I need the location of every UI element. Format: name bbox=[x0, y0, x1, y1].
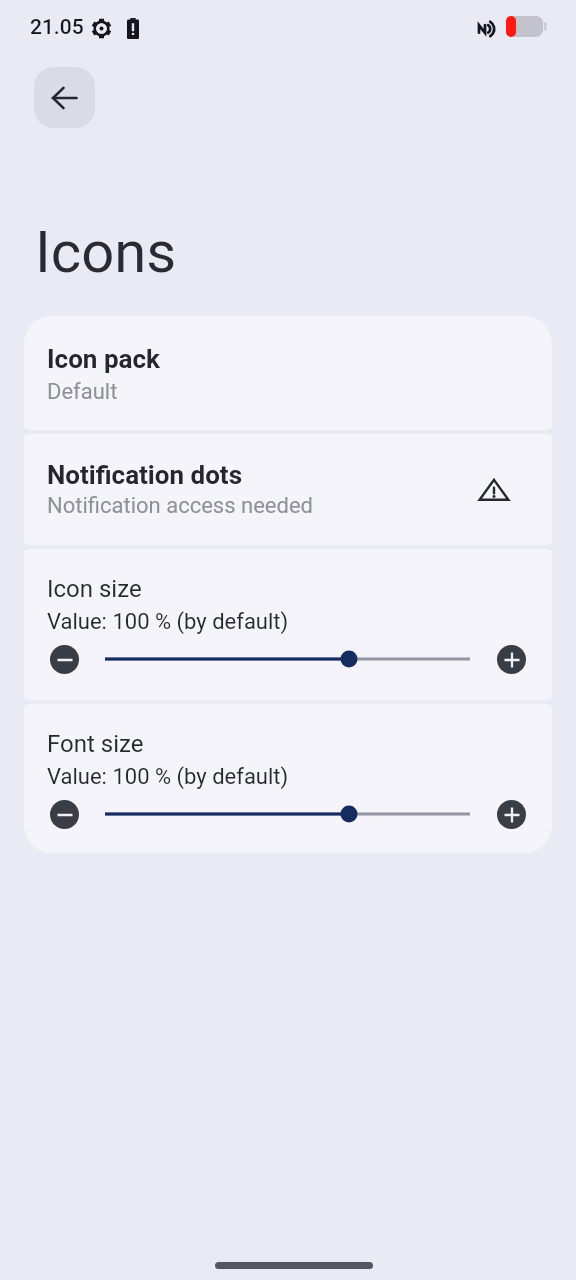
button[interactable]: Font size slider, 100 percent bbox=[105, 798, 470, 830]
staticText: Notification dots bbox=[47, 460, 243, 490]
staticText: Value: 100 % (by default) bbox=[47, 764, 289, 790]
staticText: Value: 100 % (by default) bbox=[47, 609, 289, 635]
staticText: Notification access needed bbox=[47, 493, 313, 519]
button[interactable]: Icon pack bbox=[24, 316, 552, 430]
staticText: Icon size bbox=[47, 575, 142, 603]
button[interactable]: Back bbox=[34, 67, 95, 128]
staticText: 21.05 bbox=[30, 15, 84, 40]
staticText: Default bbox=[47, 379, 118, 405]
staticText: Icon pack bbox=[47, 344, 160, 374]
button[interactable]: Notification dots bbox=[24, 434, 552, 545]
button[interactable]: Decrease bbox=[50, 800, 79, 829]
button[interactable]: Icon size slider, 100 percent bbox=[105, 643, 470, 675]
button[interactable]: Increase bbox=[497, 645, 526, 674]
button[interactable]: Decrease bbox=[50, 645, 79, 674]
button[interactable]: Increase bbox=[497, 800, 526, 829]
staticText: Icons bbox=[35, 218, 177, 286]
staticText: Font size bbox=[47, 730, 144, 758]
